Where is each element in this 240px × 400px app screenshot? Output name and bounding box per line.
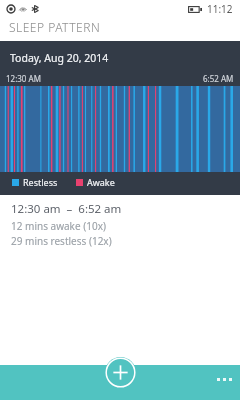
staticText: 6:52 AM xyxy=(203,73,234,84)
staticText: Awake xyxy=(87,176,115,188)
staticText: 12 mins awake (10x) xyxy=(11,219,106,233)
staticText: SLEEP PATTERN xyxy=(9,19,101,35)
button[interactable]: Today, Aug 20, 2014 xyxy=(0,41,240,195)
button[interactable]: More options xyxy=(217,378,232,381)
staticText: 12:30 am – 6:52 am xyxy=(11,201,122,217)
staticText: 29 mins restless (12x) xyxy=(11,234,112,248)
staticText: Today, Aug 20, 2014 xyxy=(10,51,109,65)
staticText: 11:12 xyxy=(207,2,233,16)
staticText: Restless xyxy=(23,176,58,188)
staticText: 12:30 AM xyxy=(6,73,41,84)
button[interactable]: 12:30 am – 6:52 am xyxy=(11,201,240,248)
button[interactable]: Add sleep entry xyxy=(105,357,136,388)
